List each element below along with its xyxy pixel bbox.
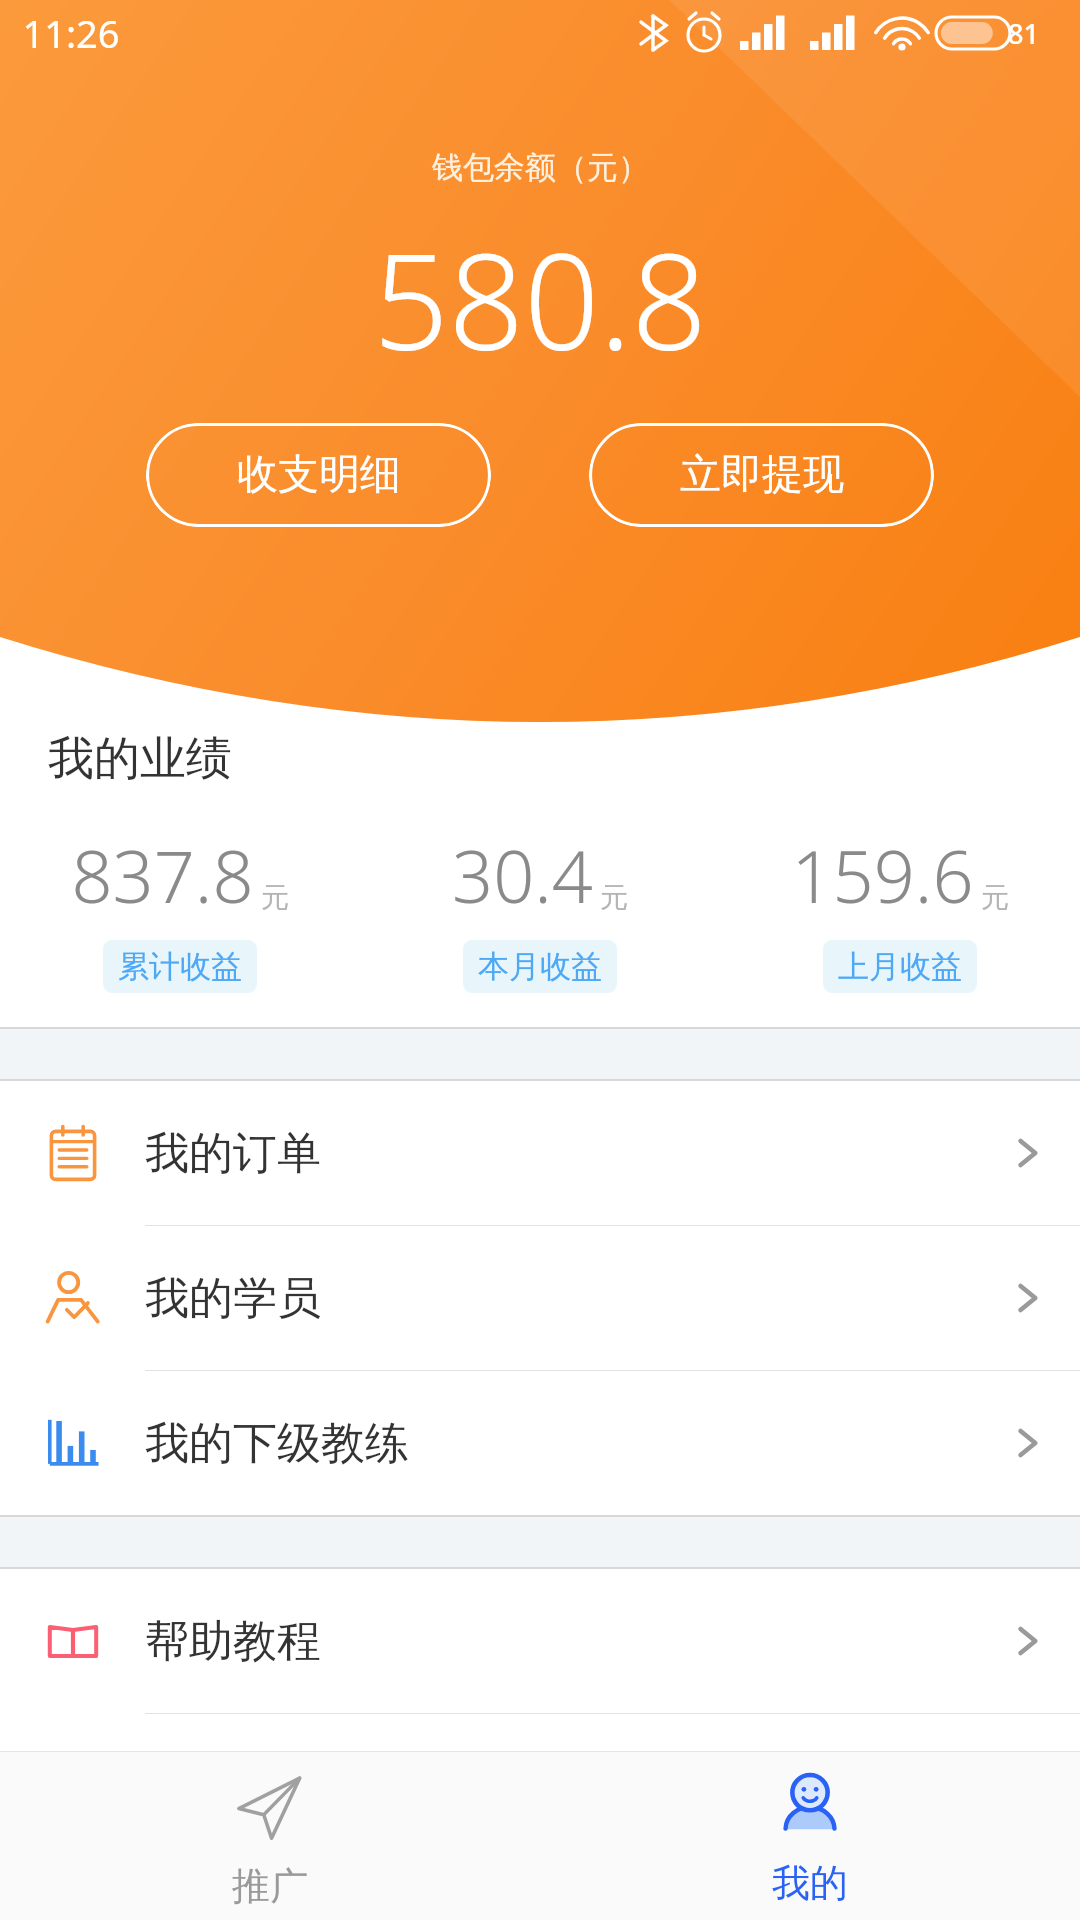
other: 我的 (774, 1771, 846, 1843)
staticText: 上月收益 (838, 947, 962, 986)
staticText: 30.4 (452, 826, 593, 924)
staticText: 钱包余额（元） (432, 148, 649, 187)
button[interactable]: 我的学员 (0, 1226, 1080, 1371)
staticText: 元 (261, 880, 289, 915)
staticText: 837.8 (71, 826, 254, 924)
staticText: 159.6 (791, 826, 974, 924)
button[interactable]: 帮助教程 (0, 1569, 1080, 1714)
staticText: 收支明细 (237, 449, 401, 501)
staticText: 帮助教程 (145, 1614, 321, 1669)
button[interactable]: 推广 (0, 1752, 540, 1920)
button[interactable]: 立即提现 (589, 423, 934, 527)
staticText: 580.8 (373, 209, 707, 389)
staticText: 元 (981, 880, 1009, 915)
staticText: 我的订单 (145, 1126, 321, 1181)
button[interactable]: 159.6 (720, 826, 1080, 993)
button[interactable]: 收支明细 (146, 423, 491, 527)
button[interactable]: 我的 (540, 1752, 1080, 1920)
staticText: 我的 (772, 1859, 848, 1907)
staticText: 累计收益 (118, 947, 242, 986)
staticText: 我的学员 (145, 1271, 321, 1326)
staticText: 81 (1008, 15, 1039, 52)
staticText: 我的业绩 (48, 730, 232, 788)
other: 推广 (231, 1768, 309, 1846)
button[interactable]: 我的下级教练 (0, 1371, 1080, 1515)
staticText: 我的下级教练 (145, 1416, 409, 1471)
staticText: 元 (600, 880, 628, 915)
button[interactable]: 30.4 (360, 826, 720, 993)
button[interactable]: 837.8 (0, 826, 360, 993)
staticText: 本月收益 (478, 947, 602, 986)
button[interactable]: 我的订单 (0, 1081, 1080, 1226)
staticText: 推广 (232, 1862, 308, 1910)
staticText: 立即提现 (680, 449, 844, 501)
staticText: 11:26 (22, 7, 120, 59)
